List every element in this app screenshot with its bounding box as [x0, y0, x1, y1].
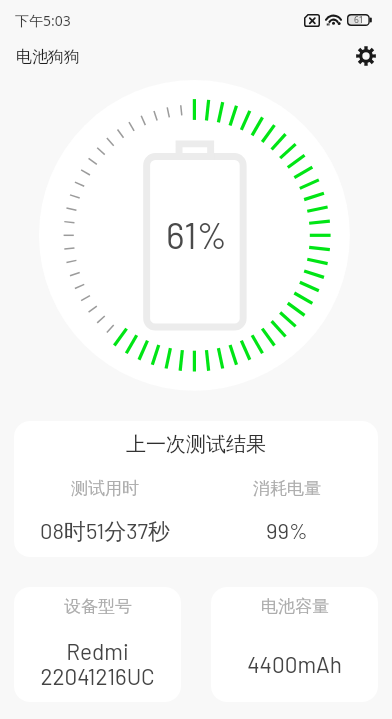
- staticText: 消耗电量: [253, 478, 321, 499]
- staticText: 测试用时: [71, 478, 139, 499]
- staticText: 电池狗狗: [16, 47, 80, 67]
- staticText: 08时51分37秒: [40, 517, 171, 546]
- staticText: 电池容量: [261, 596, 329, 617]
- staticText: 99%: [266, 517, 308, 543]
- staticText: 上一次测试结果: [14, 432, 378, 457]
- staticText: 下午5:03: [15, 11, 71, 30]
- staticText: 61: [354, 14, 364, 26]
- staticText: 4400mAh: [247, 650, 342, 677]
- button[interactable]: 上一次测试结果: [14, 421, 378, 557]
- button[interactable]: Settings: [349, 39, 383, 73]
- staticText: Redmi 22041216UC: [40, 637, 155, 689]
- staticText: 61%: [166, 213, 228, 256]
- button[interactable]: 电池容量: [211, 587, 378, 702]
- staticText: 设备型号: [64, 596, 132, 617]
- button[interactable]: 设备型号: [14, 587, 181, 702]
